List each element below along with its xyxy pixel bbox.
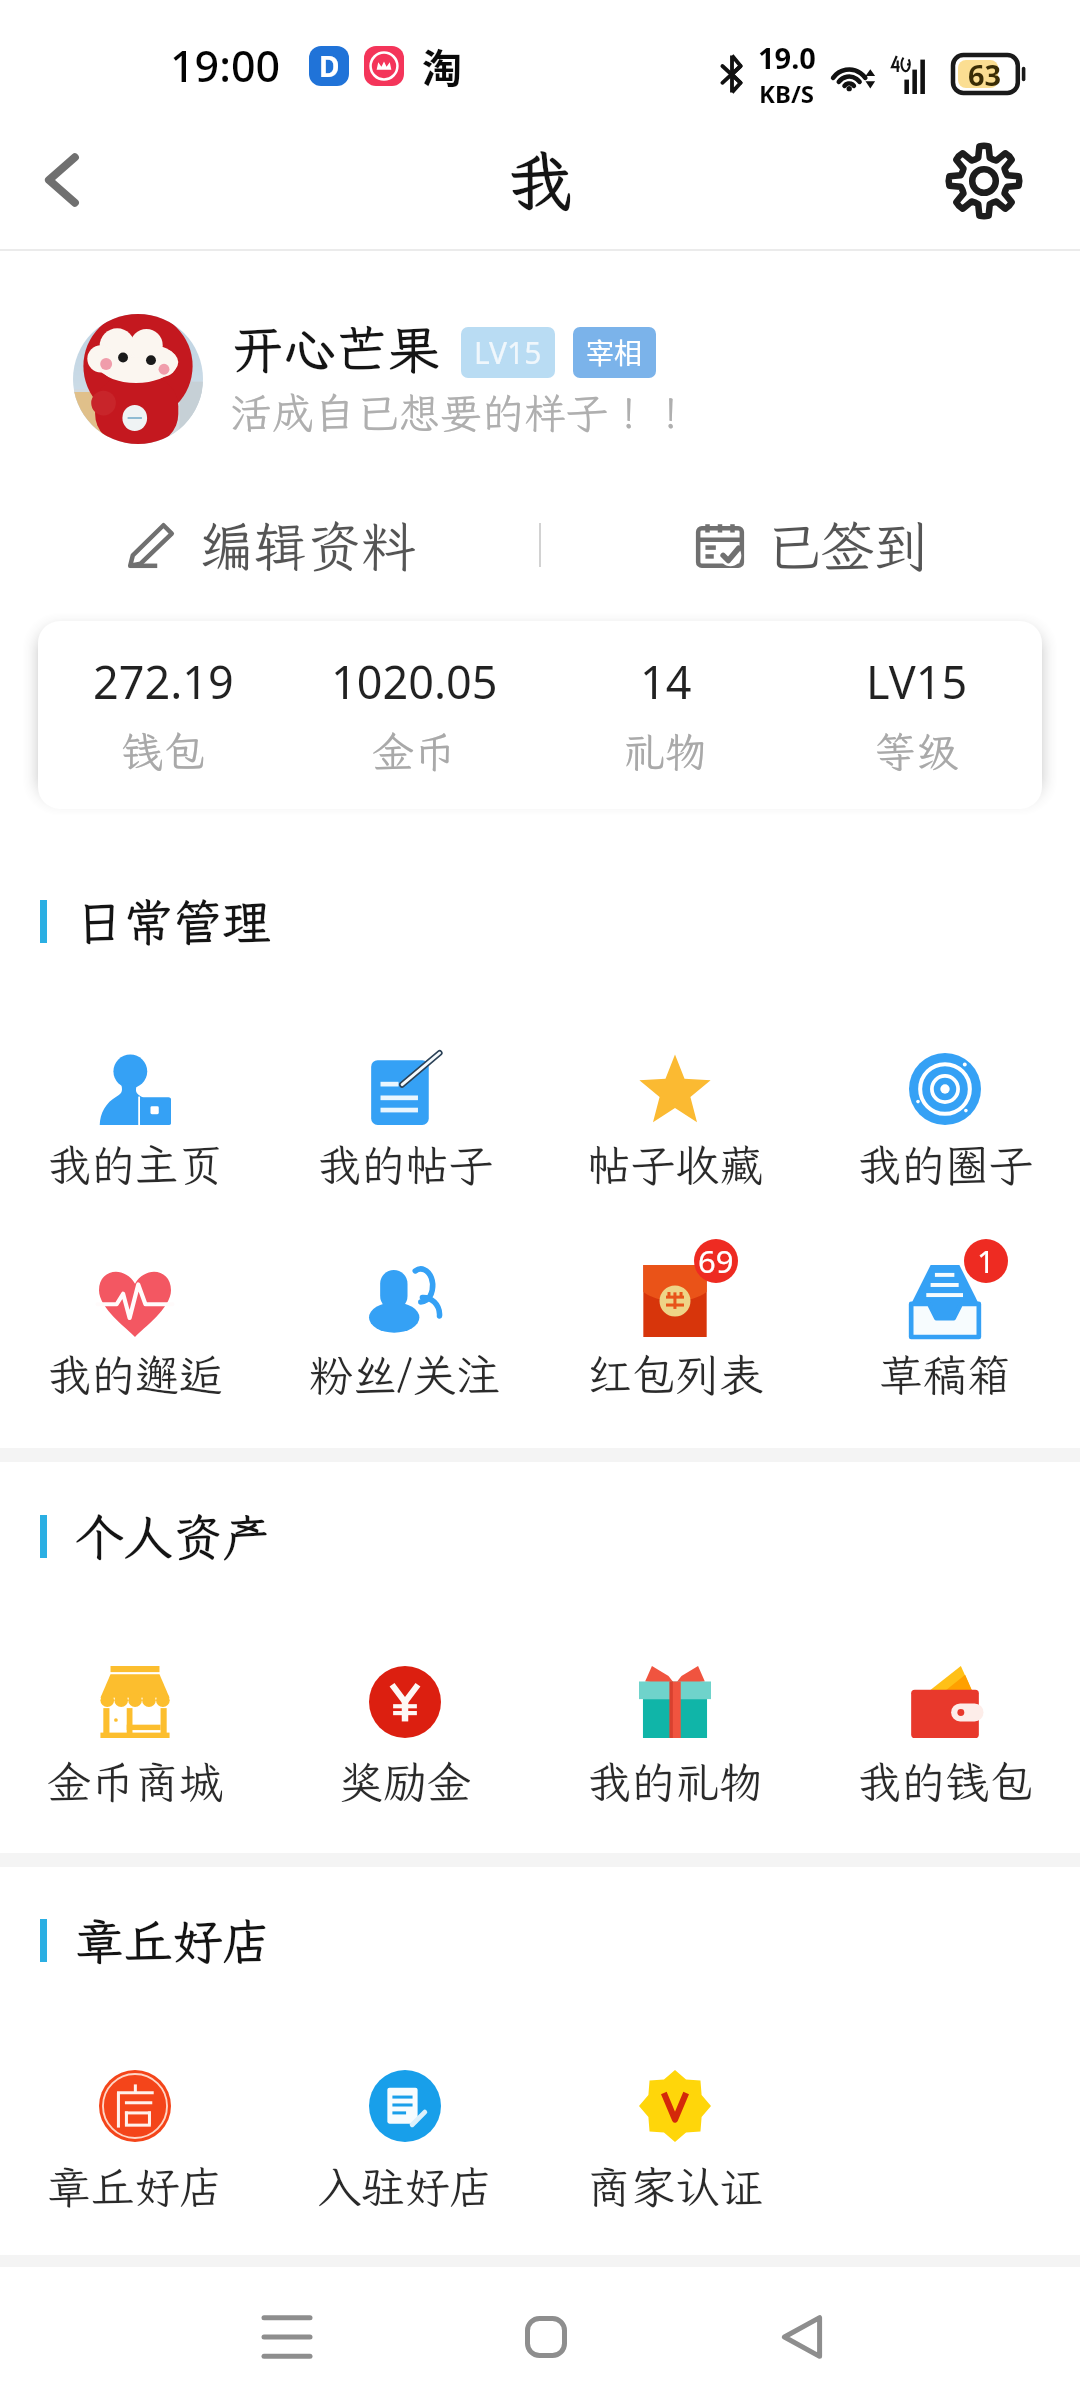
staticText: 入驻好店 (317, 2158, 493, 2216)
button[interactable]: 272.19 (38, 621, 289, 809)
button[interactable]: 商家认证 (540, 2062, 810, 2242)
staticText: 编辑资料 (199, 510, 415, 581)
button[interactable]: 帖子收藏 (540, 1045, 810, 1225)
button[interactable]: Settings (929, 130, 1039, 240)
button[interactable]: 粉丝/关注 (270, 1257, 540, 1437)
button[interactable]: 14 (540, 621, 791, 809)
staticText: 63 (968, 55, 1002, 94)
button[interactable]: Back (747, 2282, 857, 2392)
staticText: 奖励金 (339, 1753, 471, 1811)
button[interactable]: 已签到 (541, 496, 1080, 594)
staticText: 1 (977, 1240, 995, 1282)
button[interactable]: 我的帖子 (270, 1045, 540, 1225)
staticText: 章丘好店 (47, 2158, 223, 2216)
staticText: 商家认证 (587, 2158, 763, 2216)
button[interactable]: 编辑资料 (0, 496, 539, 594)
button[interactable]: 我的礼物 (540, 1658, 810, 1838)
staticText: 帖子收藏 (587, 1136, 763, 1194)
staticText: 宰相 (586, 332, 643, 373)
button[interactable]: 我的主页 (0, 1045, 270, 1225)
staticText: 我的主页 (47, 1136, 223, 1194)
staticText: 我的钱包 (857, 1753, 1033, 1811)
staticText: 272.19 (93, 651, 234, 712)
staticText: 19:00 (170, 36, 281, 95)
button[interactable]: Back (13, 135, 113, 235)
button[interactable]: Avatar (73, 314, 203, 444)
button[interactable]: 入驻好店 (270, 2062, 540, 2242)
button[interactable]: 我的钱包 (810, 1658, 1080, 1838)
staticText: 1020.05 (331, 651, 498, 712)
staticText: 我的帖子 (317, 1136, 493, 1194)
staticText: 礼物 (623, 724, 708, 779)
staticText: 红包列表 (587, 1346, 763, 1404)
staticText: 活成自已想要的样子！！ (230, 385, 693, 440)
staticText: 开心芒果 (232, 314, 441, 382)
button[interactable]: 章丘好店 (0, 2062, 270, 2242)
button[interactable]: 我的邂逅 (0, 1257, 270, 1437)
staticText: 已签到 (766, 510, 928, 581)
staticText: 等级 (874, 724, 959, 779)
staticText: LV15 (474, 332, 542, 373)
staticText: 日常管理 (75, 889, 272, 954)
staticText: 章丘好店 (75, 1908, 272, 1973)
button[interactable]: Recent apps (232, 2282, 342, 2392)
staticText: 粉丝/关注 (309, 1346, 501, 1404)
staticText: 我的礼物 (587, 1753, 763, 1811)
button[interactable]: Home (491, 2282, 601, 2392)
staticText: 我的圈子 (857, 1136, 1033, 1194)
staticText: 我的邂逅 (47, 1346, 223, 1404)
button[interactable]: 奖励金 (270, 1658, 540, 1838)
staticText: 钱包 (121, 724, 206, 779)
staticText: 个人资产 (75, 1504, 272, 1569)
button[interactable]: 我的圈子 (810, 1045, 1080, 1225)
button[interactable]: 金币商城 (0, 1658, 270, 1838)
staticText: 草稿箱 (879, 1346, 1011, 1404)
staticText: D (319, 47, 340, 85)
staticText: 金币 (372, 724, 457, 779)
staticText: LV15 (866, 651, 968, 712)
staticText: 我 (507, 137, 573, 224)
button[interactable]: 1 (810, 1257, 1080, 1437)
button[interactable]: 1020.05 (289, 621, 540, 809)
button[interactable]: 69 (540, 1257, 810, 1437)
staticText: 19.0 (758, 38, 816, 77)
staticText: 14 (640, 651, 692, 712)
staticText: 淘 (422, 37, 462, 95)
button[interactable]: LV15 (791, 621, 1042, 809)
staticText: KB/S (759, 77, 815, 110)
staticText: 金币商城 (47, 1753, 223, 1811)
staticText: 69 (698, 1240, 734, 1282)
